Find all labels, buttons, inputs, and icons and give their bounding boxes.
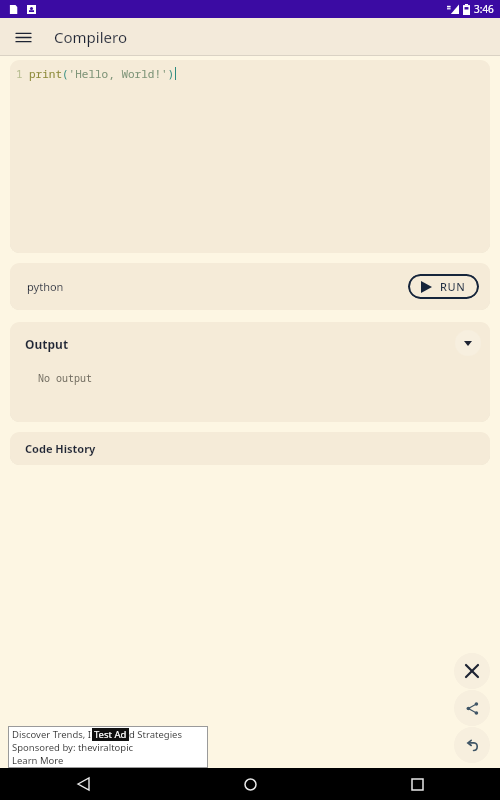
- staticText: 3:46: [474, 2, 494, 16]
- button[interactable]: Code History: [10, 432, 490, 465]
- staticText: Compilero: [54, 27, 127, 47]
- staticText: Sponsored by: theviraltopic: [12, 741, 134, 754]
- staticText: Discover Trends, I: [12, 728, 92, 741]
- button[interactable]: Open navigation menu: [10, 24, 36, 50]
- staticText: 1: [16, 66, 23, 81]
- staticText: Learn More: [12, 754, 64, 767]
- staticText: python: [27, 279, 64, 294]
- staticText: Code History: [25, 441, 96, 456]
- staticText: Test Ad: [94, 728, 127, 741]
- button[interactable]: Home: [237, 771, 263, 797]
- button[interactable]: Recent apps: [404, 771, 430, 797]
- button[interactable]: Back: [70, 771, 96, 797]
- staticText: d Strategies: [129, 728, 183, 741]
- staticText: Output: [25, 336, 69, 352]
- staticText: print('Hello, World!'): [29, 66, 175, 81]
- button[interactable]: Discover Trends, I: [8, 726, 208, 768]
- button[interactable]: Share: [454, 690, 490, 726]
- staticText: No output: [38, 371, 92, 385]
- button[interactable]: Undo: [454, 727, 490, 763]
- staticText: RUN: [440, 279, 466, 294]
- button[interactable]: Collapse output: [455, 330, 481, 356]
- button[interactable]: Close: [454, 653, 490, 689]
- button[interactable]: RUN: [408, 274, 479, 299]
